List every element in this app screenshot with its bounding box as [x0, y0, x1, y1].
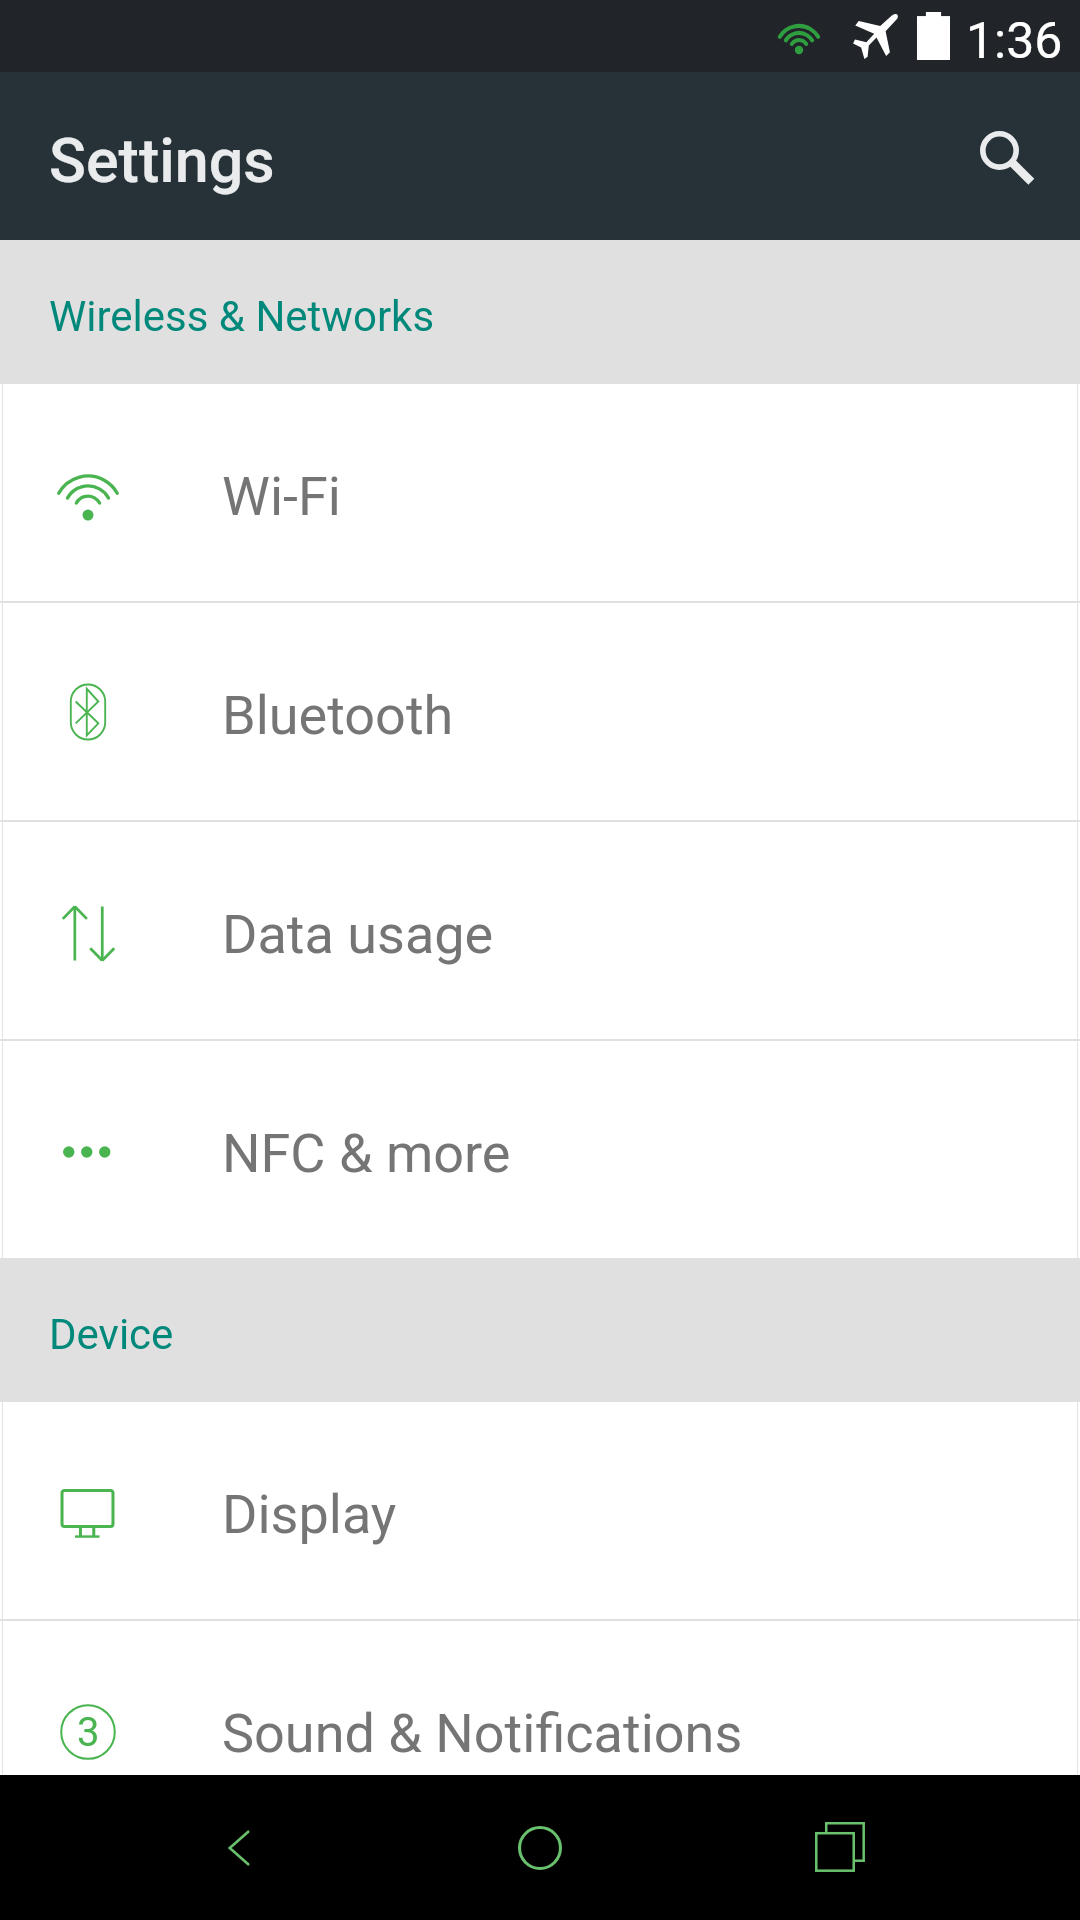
staticText: NFC & more — [222, 1122, 511, 1185]
button[interactable]: Search — [953, 108, 1057, 212]
button[interactable]: Data usage — [0, 822, 1080, 1039]
staticText: Settings — [49, 125, 275, 196]
button[interactable]: Wi-Fi — [0, 384, 1080, 601]
staticText: Wireless & Networks — [49, 292, 435, 341]
staticText: Display — [222, 1483, 397, 1546]
staticText: Wi-Fi — [222, 465, 341, 528]
button[interactable]: Bluetooth — [0, 603, 1080, 820]
button[interactable]: Back — [168, 1775, 312, 1920]
button[interactable]: Home — [468, 1775, 612, 1920]
button[interactable]: 3 — [0, 1621, 1080, 1838]
button[interactable]: Display — [0, 1402, 1080, 1619]
staticText: Device — [49, 1310, 174, 1359]
staticText: 1:36 — [966, 12, 1063, 71]
button[interactable]: Recents — [768, 1775, 912, 1920]
staticText: Sound & Notifications — [222, 1702, 743, 1765]
button[interactable]: NFC & more — [0, 1041, 1080, 1258]
staticText: 3 — [77, 1709, 100, 1756]
staticText: Bluetooth — [222, 684, 454, 747]
staticText: Data usage — [222, 903, 494, 966]
